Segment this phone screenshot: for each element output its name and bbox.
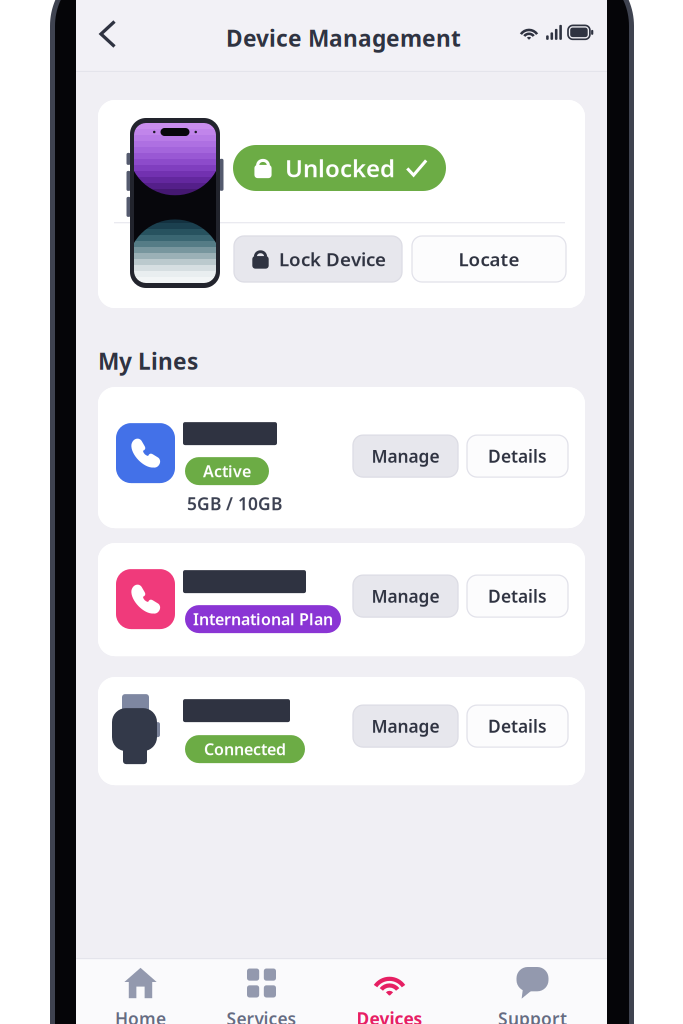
- staticText: Manage: [371, 585, 439, 608]
- staticText: Devices: [356, 1007, 422, 1024]
- button[interactable]: Manage: [353, 575, 458, 617]
- button[interactable]: Services: [201, 958, 322, 1024]
- button[interactable]: Details: [467, 705, 568, 747]
- button[interactable]: Active: [98, 387, 585, 528]
- staticText: Locate: [458, 247, 519, 271]
- staticText: Details: [488, 715, 547, 738]
- button[interactable]: Lock Device: [234, 236, 402, 282]
- staticText: Connected: [204, 738, 286, 760]
- staticText: Manage: [371, 445, 439, 468]
- staticText: 5GB / 10GB: [187, 492, 282, 515]
- staticText: Manage: [371, 715, 439, 738]
- button[interactable]: Home: [80, 958, 201, 1024]
- staticText: International Plan: [193, 608, 333, 630]
- button[interactable]: Manage: [353, 435, 458, 477]
- button[interactable]: Connected: [98, 677, 585, 785]
- staticText: Home: [115, 1007, 166, 1024]
- staticText: Support: [498, 1007, 567, 1024]
- button[interactable]: Manage: [353, 705, 458, 747]
- button[interactable]: Unlocked: [233, 145, 446, 191]
- staticText: Lock Device: [279, 247, 386, 271]
- button[interactable]: International Plan: [98, 543, 585, 656]
- staticText: Device Management: [226, 23, 461, 53]
- button[interactable]: Details: [467, 435, 568, 477]
- staticText: Services: [226, 1007, 296, 1024]
- button[interactable]: Support: [472, 958, 593, 1024]
- staticText: Active: [203, 460, 251, 482]
- button[interactable]: Devices: [329, 958, 450, 1024]
- button[interactable]: Details: [467, 575, 568, 617]
- staticText: Details: [488, 445, 547, 468]
- button[interactable]: Back: [86, 10, 130, 58]
- button[interactable]: Locate: [412, 236, 566, 282]
- staticText: Unlocked: [285, 152, 395, 184]
- staticText: Details: [488, 585, 547, 608]
- staticText: My Lines: [98, 346, 198, 376]
